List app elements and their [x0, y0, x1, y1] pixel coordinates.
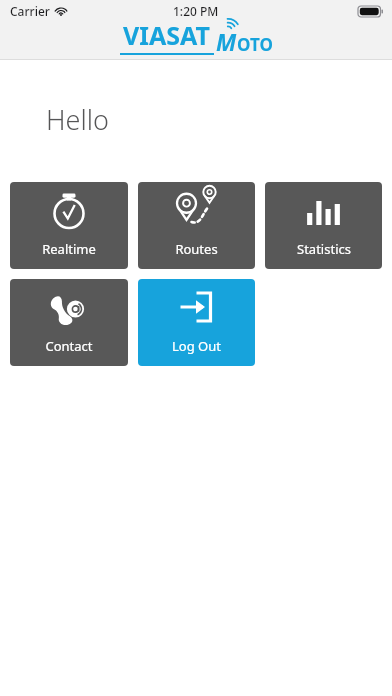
staticText: Carrier	[10, 3, 50, 19]
staticText: OTO	[237, 33, 273, 56]
button[interactable]: Routes	[138, 182, 255, 269]
staticText: Hello	[46, 101, 109, 138]
staticText: VIASAT	[123, 18, 211, 52]
button[interactable]: Statistics	[265, 182, 382, 269]
staticText: Routes	[175, 240, 218, 258]
button[interactable]: Contact	[10, 279, 128, 366]
staticText: 1:20 PM	[173, 3, 219, 19]
button[interactable]: Log Out	[138, 279, 255, 366]
staticText: Realtime	[42, 240, 96, 258]
staticText: Statistics	[297, 240, 351, 258]
staticText: Contact	[45, 337, 93, 355]
staticText: Log Out	[172, 337, 221, 355]
button[interactable]: Realtime	[10, 182, 128, 269]
staticText: M	[216, 26, 237, 57]
